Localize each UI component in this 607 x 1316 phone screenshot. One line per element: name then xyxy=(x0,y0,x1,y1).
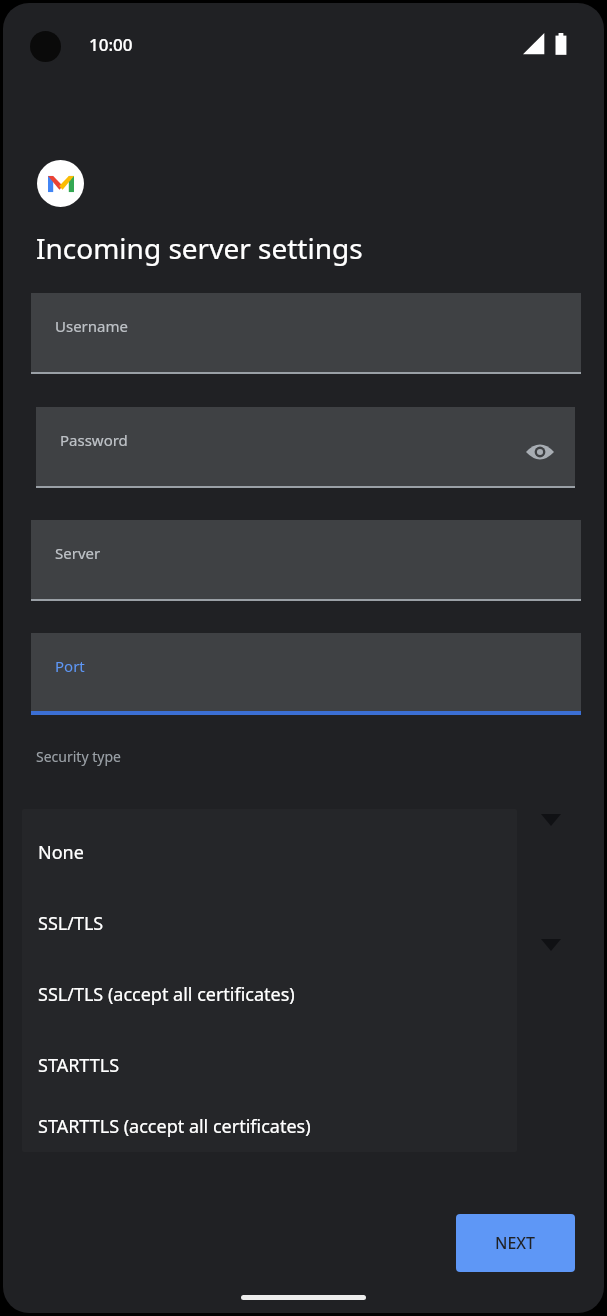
button[interactable]: Server xyxy=(31,520,581,601)
button[interactable]: Password xyxy=(36,407,575,488)
button[interactable]: NEXT xyxy=(456,1214,575,1272)
button[interactable]: SSL/TLS xyxy=(22,888,517,959)
staticText: Port xyxy=(55,656,85,676)
staticText: 10:00 xyxy=(89,33,133,56)
button[interactable]: Port xyxy=(31,633,581,715)
button[interactable]: Username xyxy=(31,293,581,374)
staticText: Incoming server settings xyxy=(36,229,363,267)
staticText: NEXT xyxy=(495,1232,536,1254)
button[interactable]: SSL/TLS (accept all certificates) xyxy=(22,959,517,1030)
staticText: Username xyxy=(55,316,128,336)
staticText: SSL/TLS (accept all certificates) xyxy=(38,982,295,1007)
staticText: Password xyxy=(60,430,128,450)
staticText: Security type xyxy=(36,747,121,766)
button[interactable]: Show password xyxy=(523,435,557,469)
staticText: STARTTLS (accept all certificates) xyxy=(38,1114,311,1139)
button[interactable]: STARTTLS xyxy=(22,1030,517,1101)
button[interactable]: None xyxy=(22,817,517,888)
staticText: None xyxy=(38,840,84,865)
button[interactable]: STARTTLS (accept all certificates) xyxy=(22,1101,517,1152)
staticText: STARTTLS xyxy=(38,1053,120,1078)
staticText: SSL/TLS xyxy=(38,911,104,936)
staticText: Server xyxy=(55,543,101,563)
